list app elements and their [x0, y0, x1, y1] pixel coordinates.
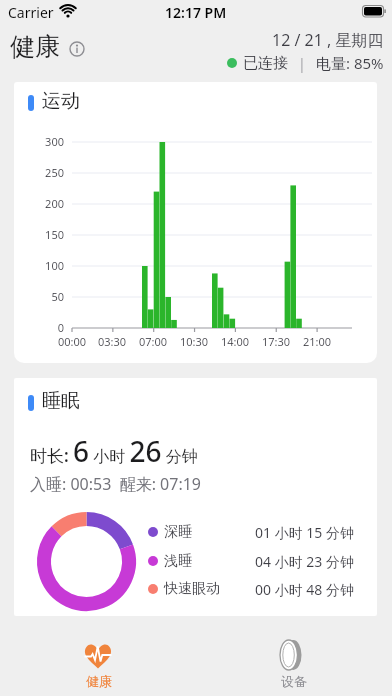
button[interactable]: 设备	[244, 632, 344, 692]
staticText: 12 / 21 , 星期四	[272, 29, 384, 51]
staticText: 50	[20, 289, 64, 304]
staticText: Carrier	[8, 3, 54, 22]
staticText: 健康	[86, 673, 112, 689]
staticText: 10:30	[170, 334, 218, 349]
staticText: 04 小时 23 分钟	[255, 552, 354, 571]
staticText: 浅睡	[164, 552, 192, 570]
staticText: 150	[20, 227, 64, 242]
staticText: 17:30	[252, 334, 300, 349]
staticText: 已连接	[243, 54, 288, 73]
staticText: 时长: 6 小时 26 分钟	[30, 432, 198, 470]
staticText: 01 小时 15 分钟	[255, 523, 354, 542]
button[interactable]: 运动	[14, 82, 377, 363]
staticText: 快速眼动	[164, 580, 220, 598]
staticText: 21:00	[293, 334, 341, 349]
staticText: 健康	[10, 31, 60, 62]
staticText: 设备	[281, 673, 307, 689]
staticText: 100	[20, 258, 64, 273]
staticText: |	[298, 54, 306, 73]
staticText: 深睡	[164, 523, 192, 541]
button[interactable]: 睡眠	[14, 378, 377, 616]
staticText: 00 小时 48 分钟	[255, 580, 354, 599]
staticText: 250	[20, 165, 64, 180]
staticText: 12:17 PM	[165, 3, 227, 22]
staticText: 0	[20, 320, 64, 335]
staticText: 运动	[42, 89, 80, 113]
staticText: 入睡: 00:53 醒来: 07:19	[30, 473, 202, 495]
staticText: 03:30	[88, 334, 136, 349]
staticText: 14:00	[211, 334, 259, 349]
staticText: 00:00	[48, 334, 96, 349]
staticText: 300	[20, 134, 64, 149]
button[interactable]: 健康	[49, 632, 149, 692]
staticText: 电量: 85%	[316, 53, 384, 73]
staticText: 07:00	[129, 334, 177, 349]
staticText: 睡眠	[42, 389, 80, 413]
staticText: 200	[20, 196, 64, 211]
